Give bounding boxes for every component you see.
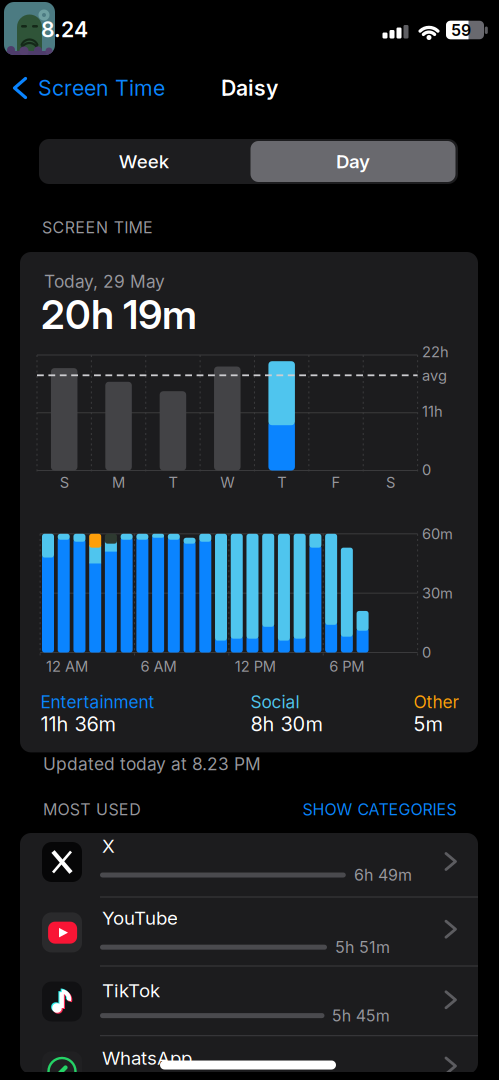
staticText: Updated today at 8.23 PM <box>43 754 261 774</box>
staticText: YouTube <box>102 907 178 929</box>
staticText: 22h <box>422 343 449 361</box>
staticText: 20h 19m <box>41 291 197 338</box>
staticText: 12 PM <box>235 658 276 675</box>
staticText: Daisy <box>221 75 278 101</box>
staticText: T <box>168 474 177 491</box>
staticText: Screen Time <box>38 75 165 101</box>
staticText: 12 AM <box>46 658 88 675</box>
staticText: Week <box>119 150 169 172</box>
staticText: 5h 51m <box>335 938 390 957</box>
staticText: M <box>112 474 125 491</box>
staticText: S <box>386 474 395 491</box>
button[interactable]: TikTok <box>20 966 478 1036</box>
staticText: TikTok <box>102 979 160 1001</box>
button[interactable]: SHOW CATEGORIES <box>302 800 456 819</box>
staticText: X <box>102 835 115 857</box>
staticText: 6 AM <box>140 658 176 675</box>
staticText: SHOW CATEGORIES <box>302 800 456 819</box>
staticText: Social <box>250 692 299 712</box>
staticText: W <box>220 474 234 491</box>
staticText: Day <box>336 150 370 172</box>
button[interactable]: WhatsApp <box>20 1036 478 1080</box>
staticText: S <box>60 474 69 491</box>
staticText: 6h 49m <box>354 866 412 884</box>
staticText: 6 PM <box>329 658 364 675</box>
staticText: Other <box>414 692 460 712</box>
button[interactable]: X <box>20 833 478 897</box>
staticText: 11h <box>422 403 443 420</box>
staticText: 0 <box>422 644 431 661</box>
staticText: T <box>277 474 286 491</box>
button[interactable]: Screen Time <box>10 66 190 110</box>
staticText: 60m <box>422 525 453 542</box>
staticText: 0 <box>422 461 431 479</box>
button[interactable]: Week <box>39 139 248 184</box>
staticText: 5m <box>414 712 443 736</box>
staticText: 5h 45m <box>332 1006 390 1025</box>
staticText: Entertainment <box>41 692 155 712</box>
staticText: avg <box>422 367 447 384</box>
staticText: SCREEN TIME <box>42 218 153 237</box>
staticText: F <box>331 474 340 491</box>
staticText: 11h 36m <box>41 712 116 736</box>
staticText: 8h 30m <box>250 712 322 736</box>
staticText: 8.24 <box>41 17 88 42</box>
staticText: 59 <box>451 21 471 40</box>
staticText: Today, 29 May <box>44 271 165 292</box>
staticText: WhatsApp <box>102 1047 192 1069</box>
staticText: 30m <box>422 584 453 602</box>
button[interactable]: Day <box>250 141 455 182</box>
button[interactable]: YouTube <box>20 897 478 966</box>
staticText: MOST USED <box>43 800 141 819</box>
